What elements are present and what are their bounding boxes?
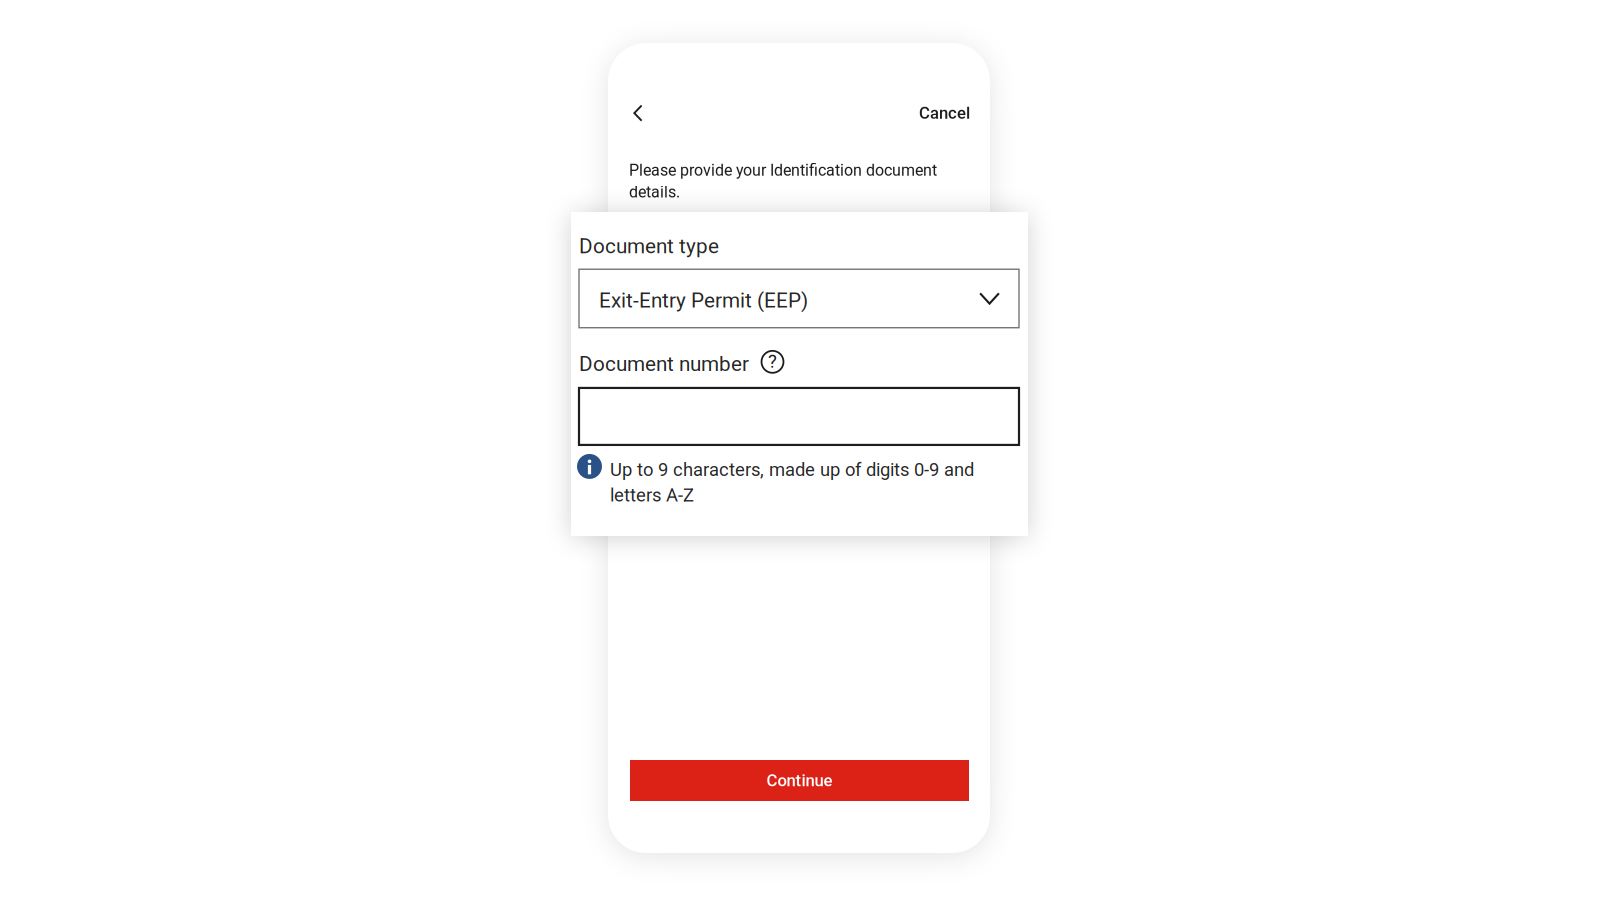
staticText: Up to 9 characters, made up of digits 0-… (610, 459, 974, 506)
button[interactable]: What is a document number? (761, 350, 784, 373)
staticText: Continue (766, 771, 832, 790)
button[interactable]: Exit-Entry Permit (EEP) (579, 269, 1019, 328)
staticText: Cancel (919, 103, 970, 123)
button[interactable]: Cancel (919, 96, 970, 130)
button[interactable]: Continue (630, 760, 969, 801)
button[interactable]: Document number entry field (579, 388, 1019, 445)
staticText: Document number (579, 352, 749, 376)
staticText: ? (768, 350, 777, 372)
staticText: Document type (579, 234, 719, 258)
button[interactable]: Back (633, 96, 663, 130)
staticText: Exit-Entry Permit (EEP) (599, 288, 808, 313)
staticText: Please provide your Identification docum… (629, 161, 937, 201)
